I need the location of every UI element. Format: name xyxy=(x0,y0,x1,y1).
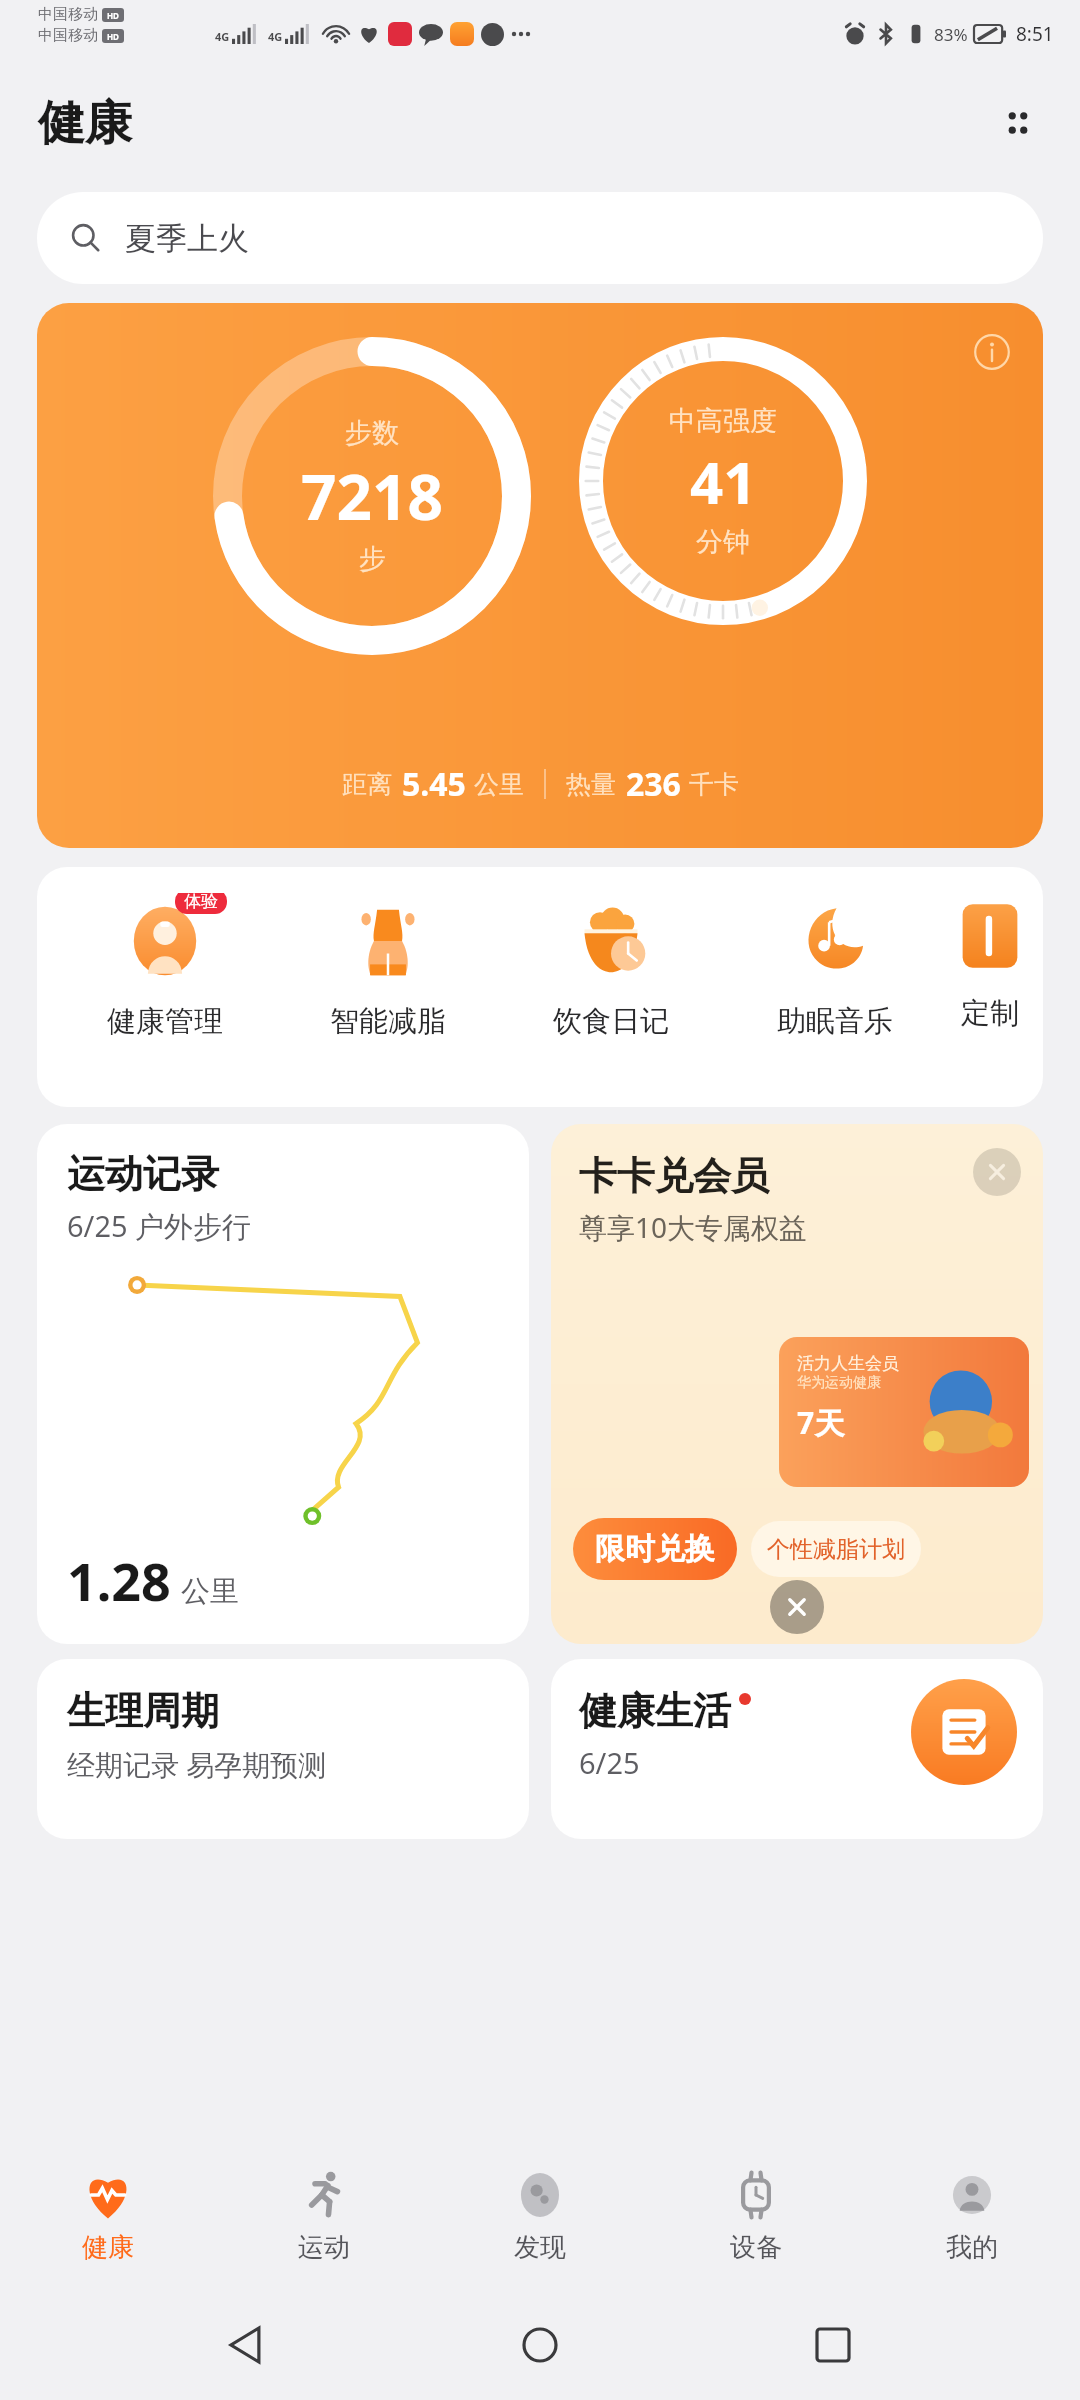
staticText: 距离 xyxy=(342,769,392,800)
staticText: 公里 xyxy=(474,769,524,800)
staticText: 中高强度 xyxy=(669,404,777,438)
button[interactable]: 饮食日记 xyxy=(499,893,723,1040)
button[interactable]: Back xyxy=(203,2300,293,2390)
staticText: 8:51 xyxy=(1016,21,1054,47)
staticText: 助眠音乐 xyxy=(777,1003,893,1040)
staticText: HD xyxy=(107,10,119,21)
button[interactable]: 助眠音乐 xyxy=(723,893,947,1040)
staticText: 饮食日记 xyxy=(553,1003,669,1040)
staticText: 步 xyxy=(359,542,386,576)
button[interactable]: Home xyxy=(495,2300,585,2390)
button[interactable]: 智能减脂 xyxy=(276,893,499,1040)
staticText: 运动 xyxy=(298,2231,350,2264)
staticText: 83% xyxy=(934,23,968,46)
button[interactable]: 卡卡兑会员 xyxy=(551,1124,1043,1644)
staticText: 6/25 户外步行 xyxy=(67,1206,252,1246)
staticText: 设备 xyxy=(730,2231,782,2264)
staticText: 智能减脂 xyxy=(330,1003,446,1040)
staticText: 运动记录 xyxy=(67,1150,219,1198)
button[interactable]: 个性减脂计划 xyxy=(751,1521,921,1577)
staticText: 热量 xyxy=(566,769,616,800)
staticText: 尊享10大专属权益 xyxy=(579,1208,808,1246)
staticText: 步数 xyxy=(345,416,399,450)
staticText: 7218 xyxy=(301,454,443,538)
staticText: 限时兑换 xyxy=(595,1530,715,1568)
staticText: 千卡 xyxy=(689,769,739,800)
staticText: 41 xyxy=(690,442,757,521)
staticText: 5.45 xyxy=(402,762,466,806)
staticText: 夏季上火 xyxy=(125,219,249,258)
staticText: 体验 xyxy=(184,893,218,912)
button[interactable]: 夏季上火 xyxy=(37,192,1043,284)
button[interactable]: Info xyxy=(965,325,1019,379)
button[interactable]: 限时兑换 xyxy=(573,1518,737,1580)
button[interactable]: 运动 xyxy=(216,2140,432,2290)
button[interactable]: 运动记录 xyxy=(37,1124,529,1644)
staticText: 我的 xyxy=(946,2231,998,2264)
button[interactable]: More options xyxy=(986,91,1050,155)
button[interactable]: Info xyxy=(37,303,1043,848)
staticText: 卡卡兑会员 xyxy=(579,1152,769,1200)
staticText: 分钟 xyxy=(696,525,750,559)
staticText: 华为运动健康 xyxy=(797,1374,881,1392)
staticText: 7天 xyxy=(797,1402,845,1443)
button[interactable]: 体验 xyxy=(53,893,276,1040)
staticText: 中国移动 xyxy=(38,5,98,24)
staticText: 健康 xyxy=(82,2231,134,2264)
button[interactable]: 健康生活 xyxy=(551,1659,1043,1839)
staticText: 公里 xyxy=(181,1573,239,1610)
staticText: 健康管理 xyxy=(107,1003,223,1040)
staticText: 4G xyxy=(215,29,230,44)
button[interactable]: 我的 xyxy=(864,2140,1080,2290)
staticText: 生理周期 xyxy=(67,1687,219,1735)
button[interactable]: 生理周期 xyxy=(37,1659,529,1839)
staticText: 发现 xyxy=(514,2231,566,2264)
button[interactable]: 健康 xyxy=(0,2140,216,2290)
staticText: 定制 xyxy=(961,995,1019,1032)
button[interactable]: 设备 xyxy=(648,2140,864,2290)
staticText: 4G xyxy=(268,29,283,44)
button[interactable]: Dismiss ad xyxy=(770,1580,824,1634)
button[interactable]: 发现 xyxy=(432,2140,648,2290)
staticText: 中国移动 xyxy=(38,26,98,45)
button[interactable]: Close xyxy=(973,1148,1021,1196)
staticText: 个性减脂计划 xyxy=(767,1535,905,1564)
staticText: HD xyxy=(107,31,119,42)
staticText: 经期记录 易孕期预测 xyxy=(67,1745,327,1783)
staticText: 6/25 xyxy=(579,1743,640,1782)
staticText: 1.28 xyxy=(67,1545,171,1616)
staticText: 健康 xyxy=(38,94,132,153)
button[interactable]: Recents xyxy=(788,2300,878,2390)
staticText: 活力人生会员 xyxy=(797,1353,899,1374)
staticText: 健康生活 xyxy=(579,1687,731,1735)
staticText: 236 xyxy=(626,762,681,806)
